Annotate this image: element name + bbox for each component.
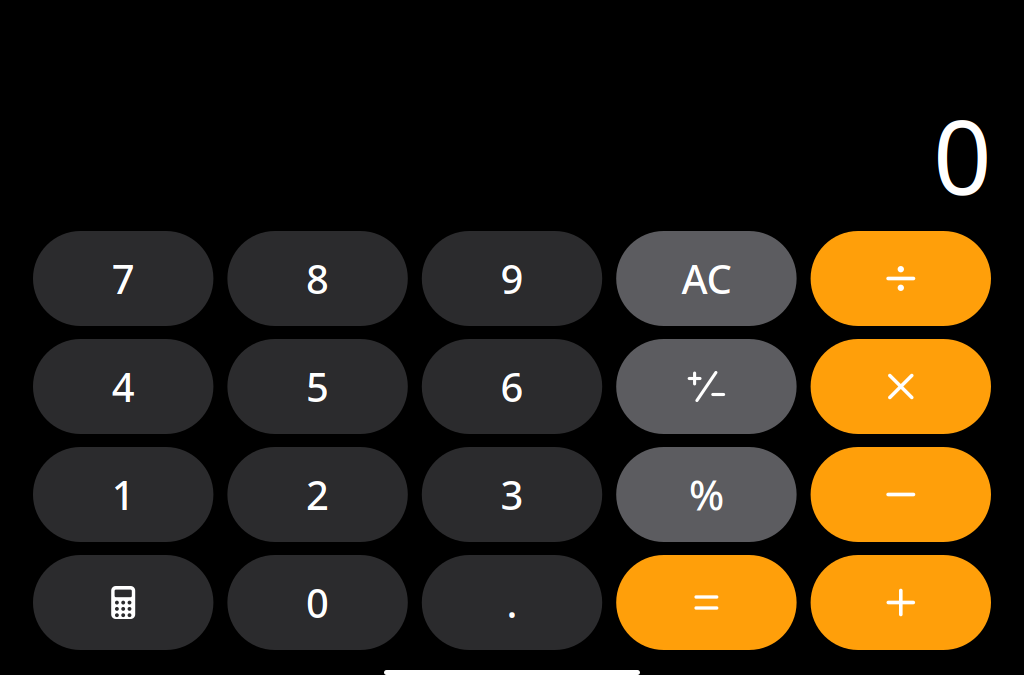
button[interactable]: 9	[422, 231, 602, 326]
button[interactable]: 8	[227, 231, 408, 326]
staticText: 7	[112, 252, 135, 305]
button[interactable]: AC	[616, 231, 797, 326]
button[interactable]: 6	[422, 339, 602, 434]
staticText: 8	[306, 252, 329, 305]
button[interactable]: 1	[33, 447, 213, 542]
staticText: %	[689, 467, 724, 522]
staticText: 6	[500, 360, 523, 413]
staticText: AC	[681, 252, 731, 305]
staticText: 4	[112, 360, 135, 413]
staticText: 2	[306, 468, 329, 521]
button[interactable]: 2	[227, 447, 408, 542]
button[interactable]: 3	[422, 447, 602, 542]
staticText: .	[506, 576, 517, 629]
button[interactable]: .	[422, 555, 602, 650]
button[interactable]: 7	[33, 231, 213, 326]
button[interactable]: %	[616, 447, 797, 542]
staticText: 5	[306, 360, 329, 413]
staticText: 3	[500, 468, 523, 521]
button[interactable]: Plus minus	[616, 339, 797, 434]
button[interactable]: Multiply	[811, 339, 991, 434]
staticText: 0	[933, 87, 992, 223]
button[interactable]: Equals	[616, 555, 797, 650]
button[interactable]: 0	[227, 555, 408, 650]
button[interactable]: 5	[227, 339, 408, 434]
staticText: 1	[112, 468, 135, 521]
staticText: 9	[500, 252, 523, 305]
button[interactable]: Divide	[811, 231, 991, 326]
button[interactable]: 4	[33, 339, 213, 434]
staticText: 0	[306, 576, 329, 629]
button[interactable]: Plus	[811, 555, 991, 650]
button[interactable]: Minus	[811, 447, 991, 542]
button[interactable]: Calculator	[33, 555, 213, 650]
